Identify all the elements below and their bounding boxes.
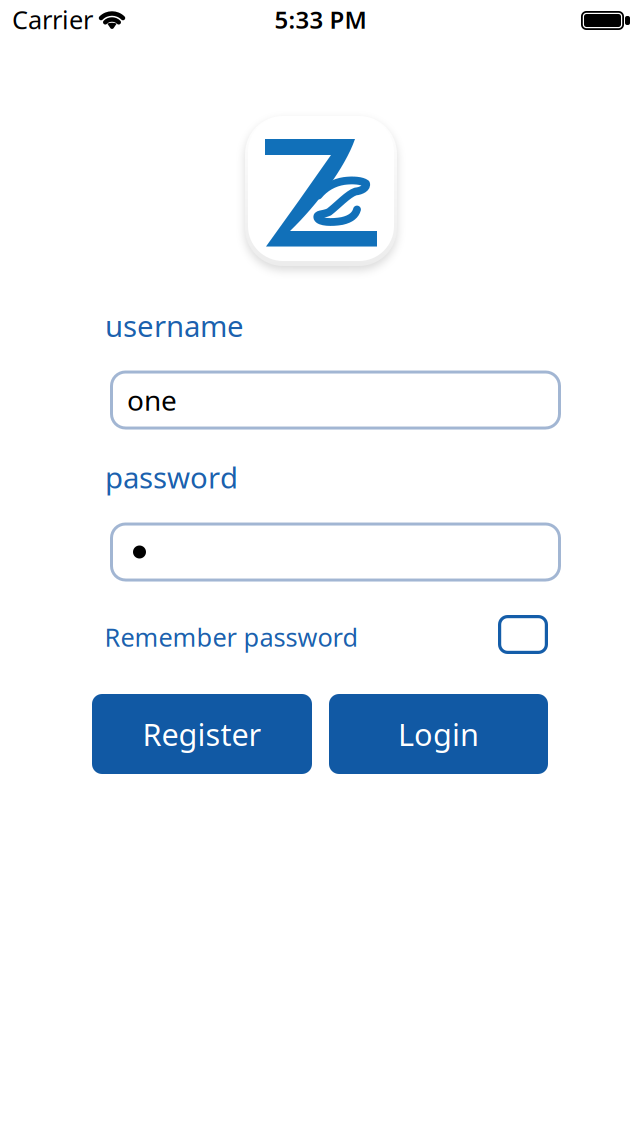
button[interactable]: username [110,370,561,429]
staticText: password [105,457,238,496]
button[interactable]: Register [92,694,312,774]
staticText: Remember password [104,620,358,654]
staticText: Register [142,714,261,754]
button[interactable]: password [110,522,561,581]
staticText: one [127,381,177,419]
staticText: username [105,306,244,345]
button[interactable]: Remember password [498,615,548,654]
staticText: Login [398,714,479,754]
staticText: Carrier [12,3,93,36]
staticText: 5:33 PM [274,4,366,35]
button[interactable]: Login [329,694,548,774]
